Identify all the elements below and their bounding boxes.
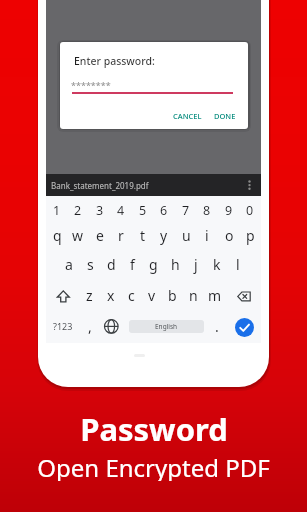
staticText: c	[128, 286, 135, 305]
button[interactable]: 8	[197, 199, 217, 221]
staticText: k	[213, 255, 221, 274]
staticText: CANCEL	[173, 111, 202, 121]
staticText: Open Encrypted PDF	[37, 451, 270, 481]
button[interactable]: 9	[219, 199, 239, 221]
staticText: i	[205, 226, 209, 245]
staticText: ,	[88, 317, 92, 336]
staticText: d	[107, 255, 116, 274]
staticText: .	[215, 317, 219, 336]
staticText: a	[65, 255, 73, 274]
button[interactable]: z	[80, 282, 99, 308]
staticText: s	[87, 255, 94, 274]
button[interactable]: x	[101, 282, 120, 308]
staticText: 3	[96, 202, 104, 219]
button[interactable]: w	[68, 222, 88, 248]
button[interactable]: t	[133, 222, 153, 248]
staticText: 6	[160, 202, 168, 219]
button[interactable]: 4	[111, 199, 131, 221]
button[interactable]	[235, 318, 254, 337]
button[interactable]	[101, 316, 122, 337]
button[interactable]: c	[122, 282, 141, 308]
button[interactable]: 2	[68, 199, 88, 221]
staticText: Bank_statement_2019.pdf	[51, 180, 149, 191]
staticText: x	[107, 286, 115, 305]
staticText: h	[171, 255, 180, 274]
staticText: w	[72, 226, 84, 245]
button[interactable]: u	[176, 222, 196, 248]
button[interactable]: 3	[90, 199, 110, 221]
staticText: f	[130, 255, 135, 274]
staticText: ********	[71, 79, 111, 91]
staticText: e	[96, 226, 104, 245]
button[interactable]: y	[154, 222, 174, 248]
button[interactable]: 1	[47, 199, 67, 221]
button[interactable]: .	[211, 315, 223, 337]
staticText: 0	[246, 202, 254, 219]
staticText: 1	[53, 202, 61, 219]
button[interactable]: q	[47, 222, 67, 248]
button[interactable]: g	[143, 251, 163, 277]
staticText: u	[182, 226, 191, 245]
staticText: n	[189, 286, 198, 305]
button[interactable]: l	[228, 251, 248, 277]
button[interactable]: r	[111, 222, 131, 248]
staticText: 9	[225, 202, 233, 219]
staticText: 2	[74, 202, 82, 219]
button[interactable]: o	[219, 222, 239, 248]
staticText: o	[225, 226, 234, 245]
button[interactable]	[53, 285, 74, 308]
button[interactable]	[233, 285, 255, 308]
button[interactable]: English	[129, 320, 204, 333]
button[interactable]: ?123	[49, 315, 77, 337]
button[interactable]: e	[90, 222, 110, 248]
button[interactable]: CANCEL	[162, 106, 212, 126]
staticText: 5	[139, 202, 147, 219]
staticText: y	[160, 226, 168, 245]
button[interactable]: 5	[133, 199, 153, 221]
button[interactable]: i	[197, 222, 217, 248]
button[interactable]: v	[142, 282, 161, 308]
button[interactable]: DONE	[205, 106, 245, 126]
staticText: Enter password:	[74, 54, 155, 68]
staticText: p	[246, 226, 255, 245]
staticText: DONE	[214, 111, 236, 121]
staticText: English	[155, 322, 178, 331]
button[interactable]: h	[165, 251, 185, 277]
staticText: b	[168, 286, 177, 305]
staticText: v	[148, 286, 156, 305]
staticText: m	[208, 286, 222, 305]
staticText: 7	[182, 202, 190, 219]
button[interactable]: k	[207, 251, 227, 277]
staticText: t	[140, 226, 146, 245]
button[interactable]: s	[80, 251, 100, 277]
button[interactable]: f	[122, 251, 142, 277]
button[interactable]: 7	[176, 199, 196, 221]
staticText: r	[118, 226, 124, 245]
staticText: j	[194, 255, 198, 274]
button[interactable]: d	[101, 251, 121, 277]
button[interactable]: p	[240, 222, 260, 248]
staticText: 4	[117, 202, 125, 219]
button[interactable]: ,	[84, 315, 96, 337]
staticText: g	[149, 255, 158, 274]
button[interactable]: 6	[154, 199, 174, 221]
staticText: ?123	[53, 320, 73, 332]
button[interactable]: 0	[240, 199, 260, 221]
button[interactable]: m	[205, 282, 224, 308]
staticText: 8	[203, 202, 211, 219]
button[interactable]: b	[163, 282, 182, 308]
staticText: z	[86, 286, 93, 305]
button[interactable]: j	[186, 251, 206, 277]
staticText: l	[236, 255, 240, 274]
staticText: q	[53, 226, 62, 245]
staticText: Password	[80, 408, 228, 443]
button[interactable]: a	[59, 251, 79, 277]
button[interactable]: n	[184, 282, 203, 308]
